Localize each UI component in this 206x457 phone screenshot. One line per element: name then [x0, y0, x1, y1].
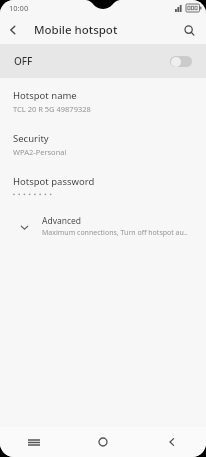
staticText: Hotspot password [13, 175, 95, 188]
button[interactable]: Back [0, 17, 26, 43]
staticText: OFF [14, 54, 33, 68]
button[interactable]: OFF [0, 44, 206, 78]
staticText: Maximum connections, Turn off hotspot au… [42, 228, 188, 238]
staticText: 10:00 [9, 3, 29, 13]
button[interactable]: Security [0, 130, 206, 159]
button[interactable]: Advanced [0, 213, 206, 240]
button[interactable]: Back [137, 427, 206, 457]
staticText: WPA2-Personal [13, 147, 67, 157]
button[interactable]: Hotspot name [0, 87, 206, 116]
button[interactable]: Search [177, 18, 201, 42]
staticText: Security [13, 132, 49, 145]
staticText: Hotspot name [13, 89, 77, 102]
staticText: Mobile hotspot [34, 22, 118, 38]
button[interactable]: Home [68, 427, 137, 457]
button[interactable]: Hotspot password [0, 173, 206, 199]
staticText: Advanced [42, 215, 82, 227]
staticText: TCL 20 R 5G 49879328 [13, 104, 91, 114]
button[interactable]: Recent apps [0, 427, 68, 457]
